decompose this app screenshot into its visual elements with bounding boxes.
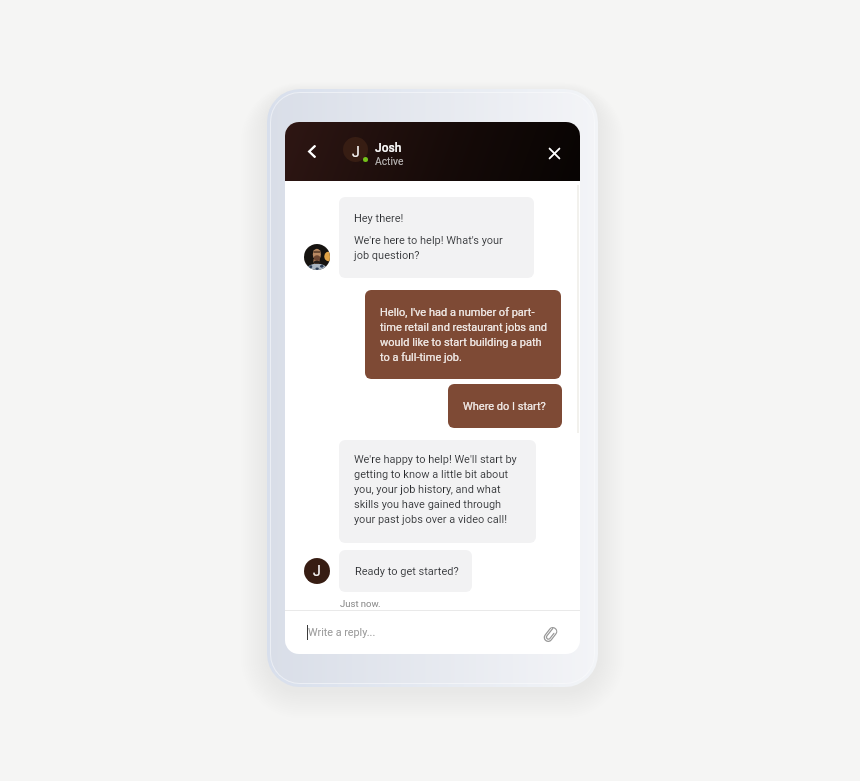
staticText: Ready to get started?	[355, 565, 459, 578]
button[interactable]: Hey there!	[339, 197, 534, 278]
button[interactable]: Ready to get started?	[339, 550, 472, 592]
staticText: Josh	[375, 141, 402, 155]
staticText: Where do I start?	[463, 400, 546, 413]
staticText: Hello, I've had a number of part- time r…	[380, 306, 548, 364]
button[interactable]: Close	[543, 142, 566, 165]
staticText: J	[313, 563, 321, 579]
staticText: We're here to help! What's your job ques…	[354, 234, 503, 262]
staticText: J	[352, 144, 360, 160]
button[interactable]: Where do I start?	[448, 384, 562, 428]
button[interactable]: We're happy to help! We'll start by gett…	[339, 440, 536, 543]
button[interactable]: Back	[299, 139, 324, 164]
button[interactable]: Attach file	[539, 623, 561, 645]
staticText: Hey there!	[354, 212, 404, 225]
button[interactable]: Hello, I've had a number of part- time r…	[365, 290, 561, 379]
staticText: Write a reply...	[308, 626, 376, 639]
staticText: Active	[375, 155, 404, 167]
staticText: Just now.	[340, 598, 381, 609]
staticText: We're happy to help! We'll start by gett…	[354, 453, 517, 526]
